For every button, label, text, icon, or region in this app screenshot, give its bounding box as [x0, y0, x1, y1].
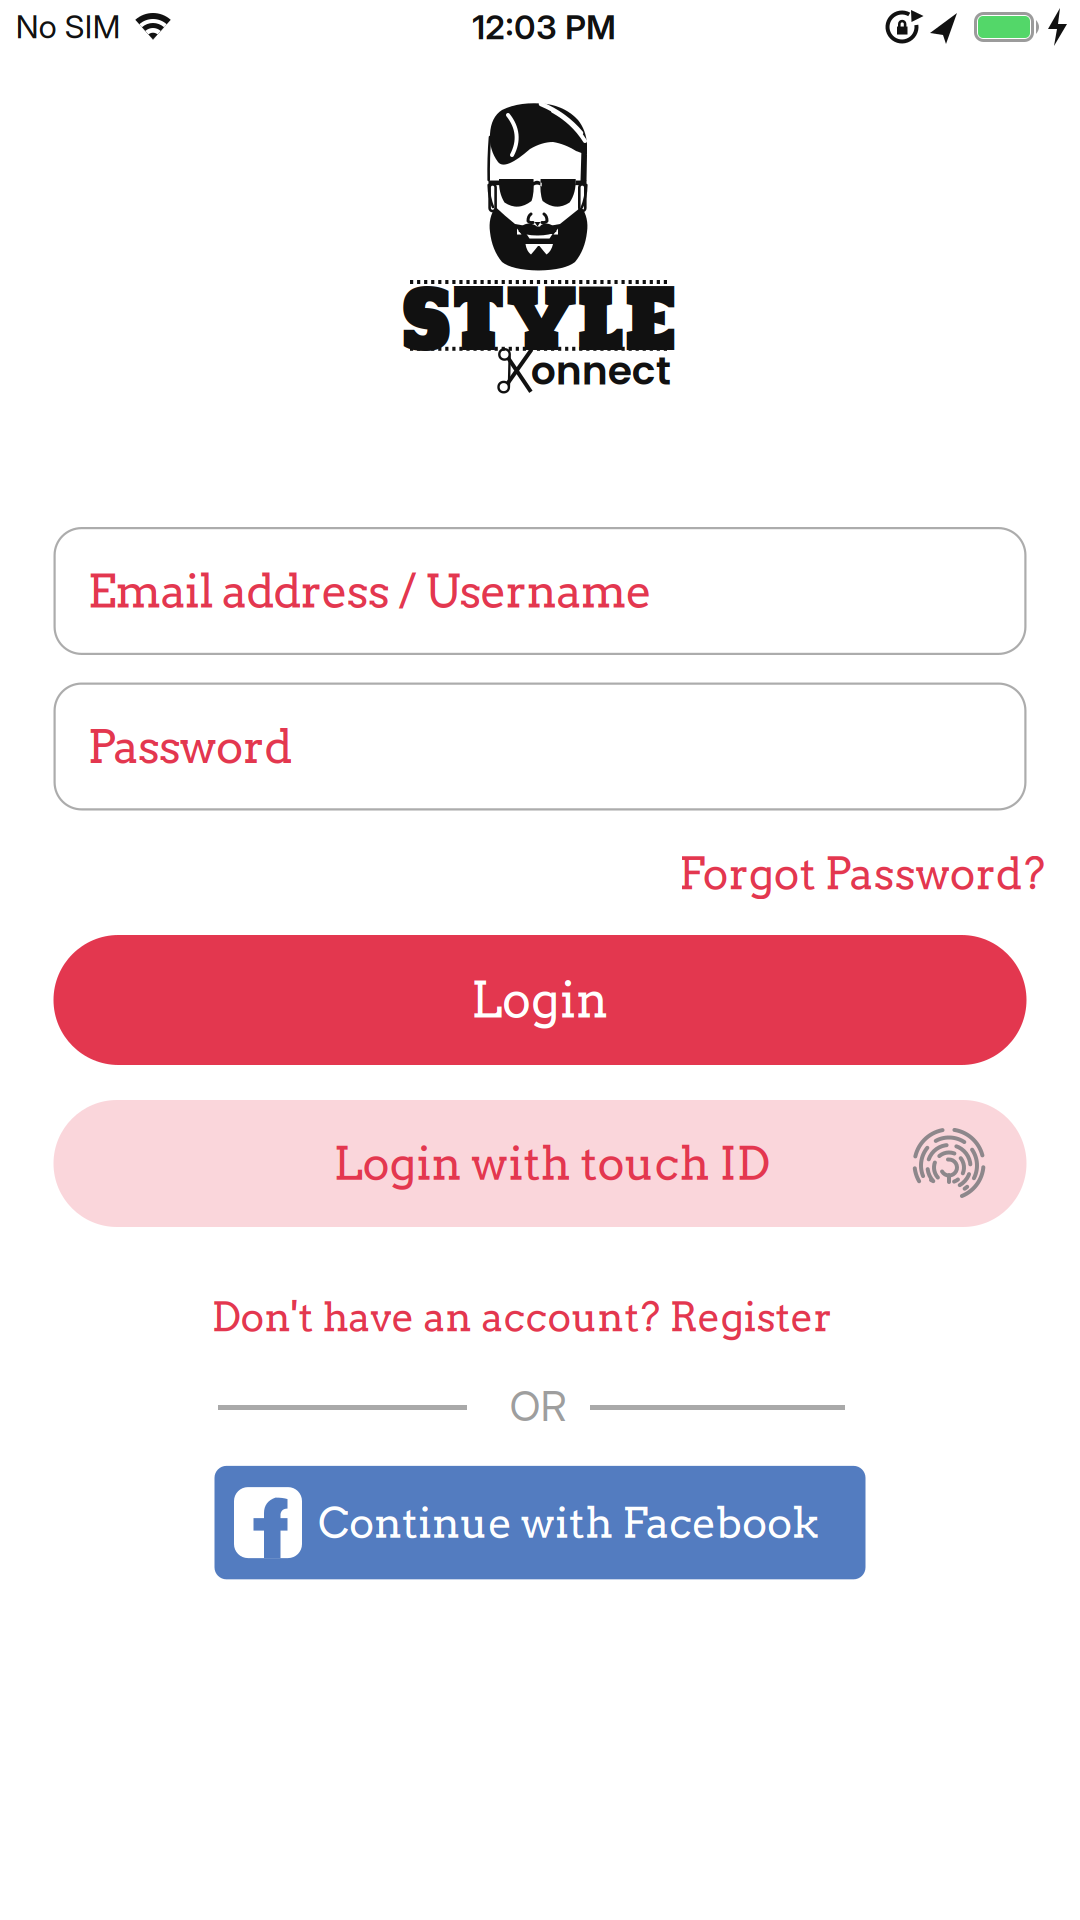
button[interactable]: Email address / Username	[53, 527, 1026, 655]
staticText: No SIM	[15, 7, 120, 46]
staticText: Email address / Username	[87, 563, 652, 619]
staticText: OR	[509, 1381, 566, 1431]
staticText: Password	[87, 719, 292, 774]
staticText: onnect	[531, 343, 671, 398]
button[interactable]: Password	[53, 682, 1026, 810]
button[interactable]: Forgot Password?	[679, 848, 1045, 900]
staticText: Login with touch ID	[333, 1136, 770, 1191]
staticText: STYLE	[374, 248, 704, 386]
button[interactable]: Login	[53, 935, 1026, 1065]
button[interactable]: Don't have an account? Register	[211, 1293, 832, 1341]
staticText: 12:03 PM	[472, 7, 616, 47]
button[interactable]: Login with touch ID	[53, 1100, 1026, 1227]
staticText: Login	[471, 970, 609, 1029]
staticText: Continue with Facebook	[318, 1497, 819, 1548]
staticText: Don't have an account? Register	[211, 1293, 832, 1341]
staticText: Forgot Password?	[679, 848, 1045, 900]
button[interactable]: Continue with Facebook	[214, 1466, 865, 1579]
